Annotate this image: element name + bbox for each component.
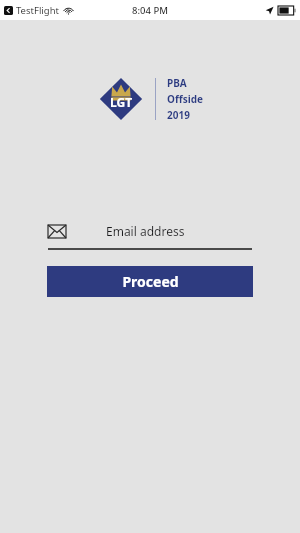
staticText: 2019 xyxy=(167,108,190,122)
staticText: Email address xyxy=(106,223,185,239)
staticText: LGT xyxy=(110,94,133,110)
staticText: TestFlight xyxy=(16,4,59,17)
staticText: 8:04 PM xyxy=(132,4,168,17)
button[interactable]: Proceed xyxy=(47,266,253,297)
staticText: PBA xyxy=(167,76,187,90)
staticText: Proceed xyxy=(122,272,179,291)
button[interactable]: Email xyxy=(48,220,252,242)
other: Email xyxy=(48,225,66,238)
staticText: Offside xyxy=(167,92,203,106)
